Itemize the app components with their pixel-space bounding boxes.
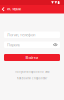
button[interactable]: Back <box>0 5 6 13</box>
staticText: Пароль <box>7 42 20 47</box>
staticText: МТС Музыка <box>6 7 21 11</box>
staticText: Логин, телефон <box>7 32 35 37</box>
button[interactable]: Как войти с паролем? <box>4 76 60 80</box>
button[interactable]: Войти <box>4 54 60 61</box>
button[interactable]: Получить пароль по SMS <box>4 70 60 73</box>
staticText: Получить пароль по SMS <box>15 70 49 73</box>
staticText: Войти <box>25 55 38 60</box>
staticText: Как войти с паролем? <box>17 76 47 80</box>
